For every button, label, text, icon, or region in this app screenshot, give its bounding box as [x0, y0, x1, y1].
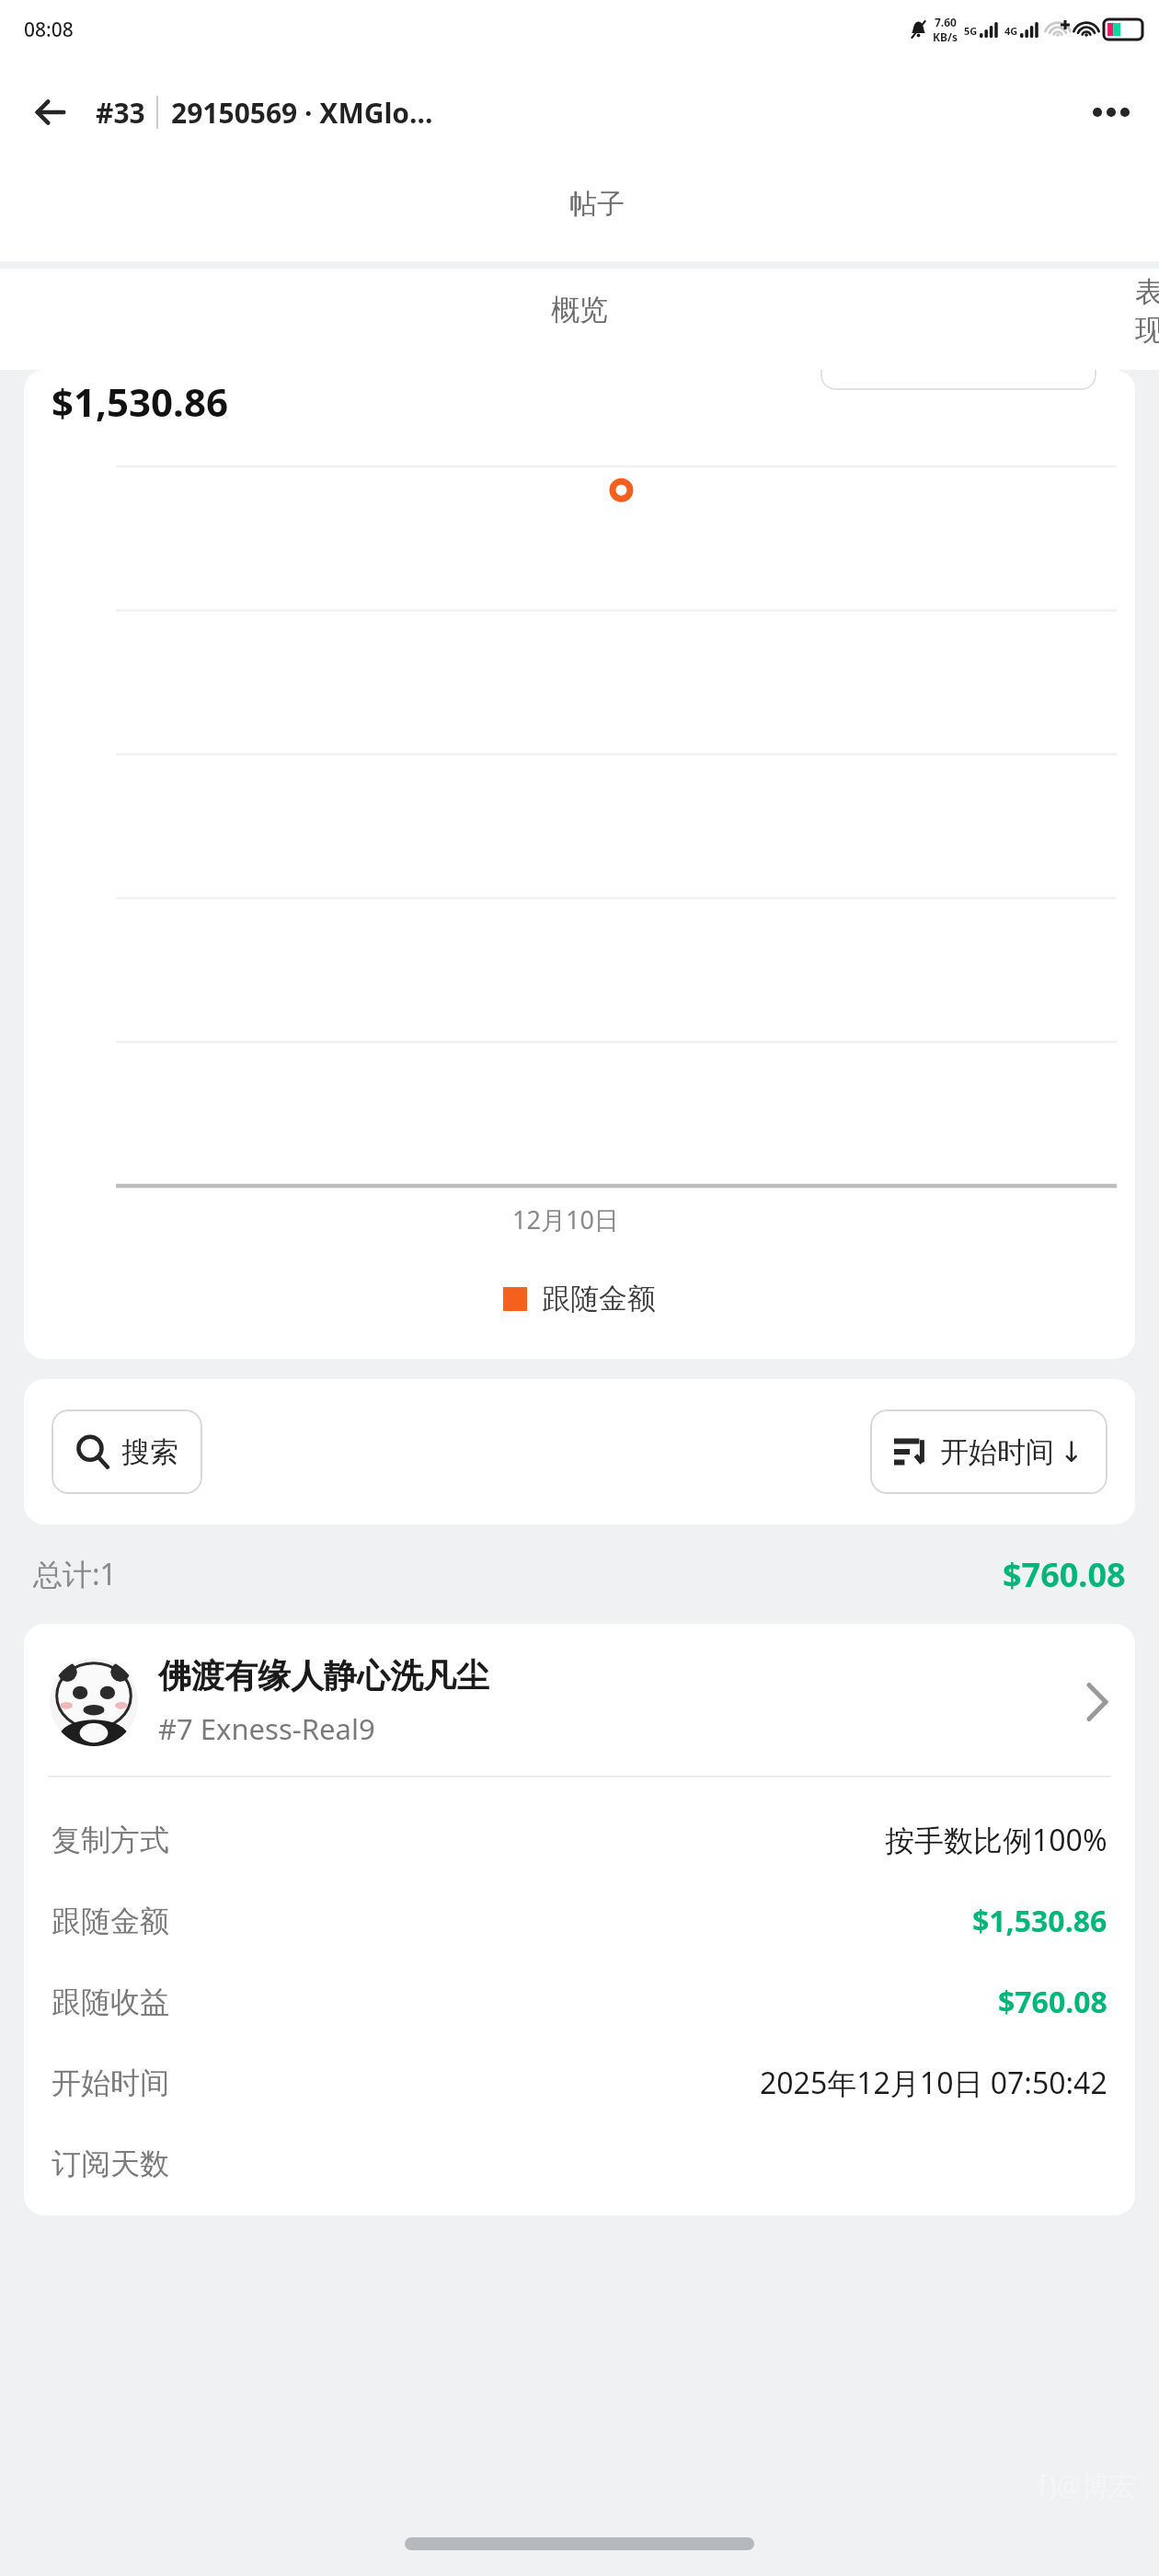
button[interactable]	[820, 370, 1096, 390]
staticText: #33	[96, 94, 145, 132]
staticText: 29150569 · XMGlo...	[171, 94, 1084, 132]
button[interactable]: 开始时间	[870, 1409, 1107, 1494]
staticText: KB/s	[933, 29, 958, 44]
staticText: $1,530.86	[972, 1901, 1107, 1941]
staticText: $760.08	[998, 1982, 1107, 2022]
staticText: 搜索	[121, 1434, 178, 1470]
button[interactable]: 概览	[24, 286, 1135, 352]
staticText: 概览	[551, 292, 608, 328]
button[interactable]: 佛渡有缘人静心洗凡尘	[24, 1624, 1135, 2215]
staticText: 按手数比例100%	[885, 1820, 1107, 1860]
staticText: 08:08	[24, 17, 74, 43]
staticText: $1,530.86	[52, 375, 228, 428]
staticText: $760.08	[1003, 1552, 1126, 1597]
button[interactable]: More options	[1084, 85, 1139, 140]
staticText: ↓	[1060, 1435, 1084, 1468]
staticText: 跟随金额	[52, 1903, 169, 1939]
staticText: 跟随收益	[52, 1984, 169, 2020]
staticText: #7 Exness-Real9	[158, 1709, 375, 1748]
staticText: 佛渡有缘人静心洗凡尘	[158, 1655, 489, 1696]
button[interactable]: Back	[20, 82, 81, 143]
staticText: 开始时间	[52, 2064, 169, 2101]
staticText: 跟随金额	[542, 1281, 656, 1317]
staticText: 12月10日	[24, 1202, 1107, 1236]
button[interactable]: 帖子	[35, 181, 1159, 247]
staticText: 2025年12月10日 07:50:42	[760, 2063, 1107, 2103]
staticText: 5G	[964, 24, 978, 38]
staticText: 帖子	[569, 187, 625, 222]
staticText: 复制方式	[52, 1822, 169, 1858]
staticText: 7.60	[935, 15, 957, 29]
staticText: 4G	[1004, 24, 1018, 38]
staticText: 总计:1	[33, 1554, 117, 1594]
staticText: 订阅天数	[52, 2145, 169, 2182]
staticText: 开始时间	[940, 1434, 1054, 1470]
button[interactable]: 搜索	[52, 1409, 202, 1494]
